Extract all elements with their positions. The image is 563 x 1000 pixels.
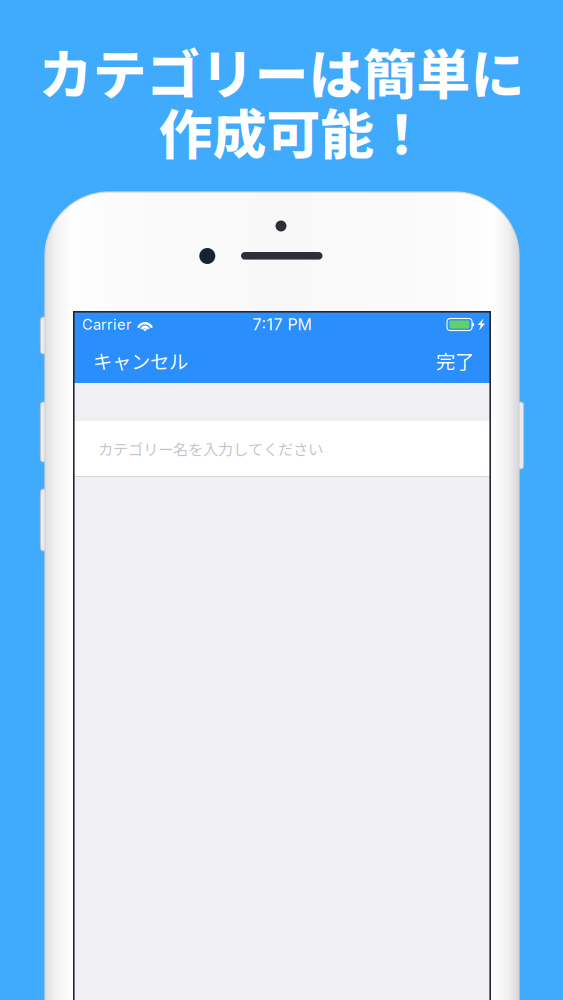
staticText: 7:17 PM [252,315,311,334]
staticText: カテゴリーは簡単に [38,32,524,110]
staticText: カテゴリー名を入力してください [98,437,323,460]
button[interactable]: キャンセル [80,338,201,383]
staticText: Carrier [82,316,132,333]
staticText: キャンセル [93,346,188,374]
staticText: 作成可能！ [158,92,428,170]
button[interactable]: 完了 [423,338,487,383]
button[interactable]: カテゴリー名を入力してください [73,421,491,476]
staticText: 完了 [436,346,474,374]
